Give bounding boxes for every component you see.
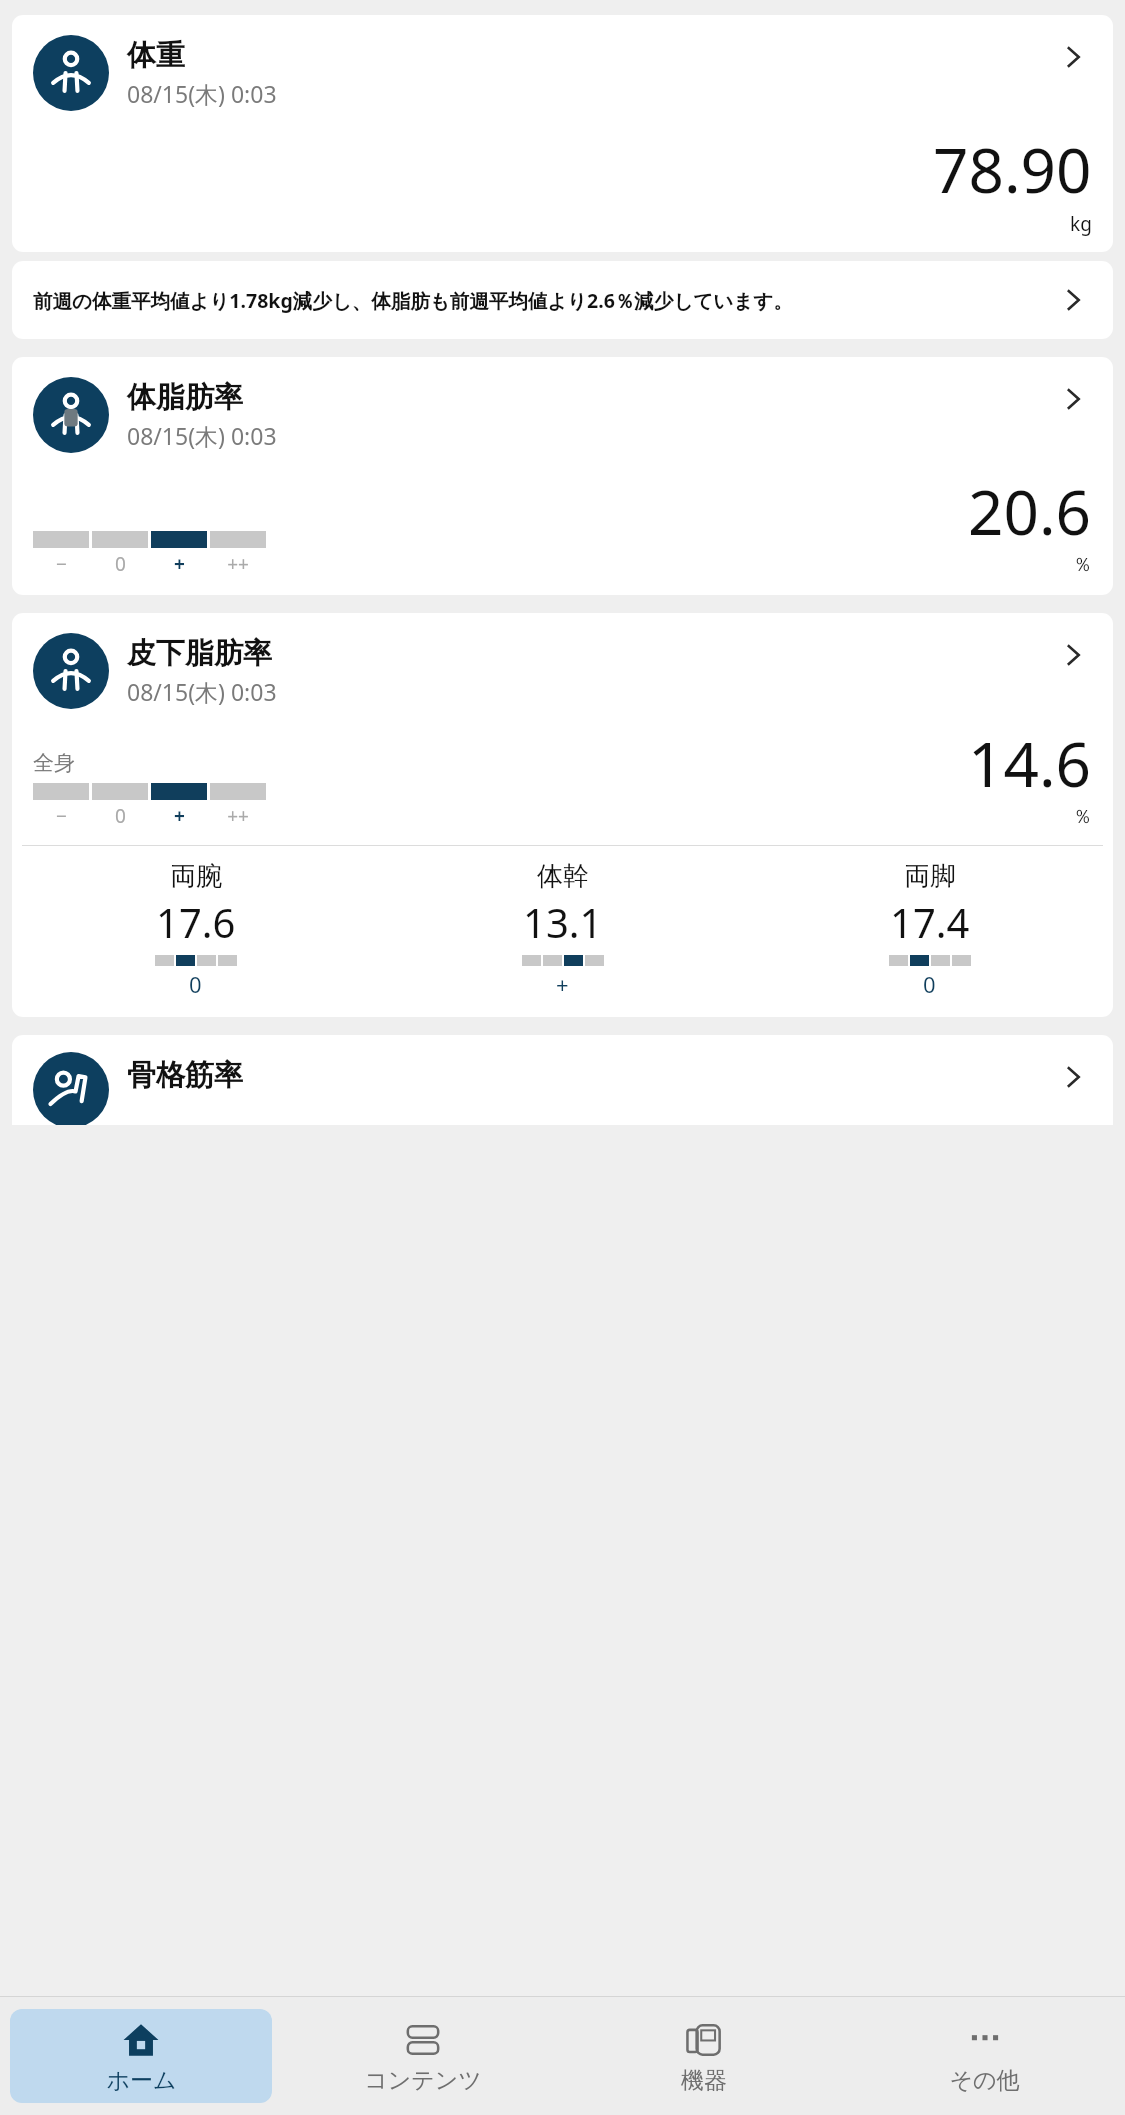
- staticText: ％: [1073, 553, 1092, 577]
- staticText: 08/15(木) 0:03: [127, 78, 277, 109]
- staticText: −: [56, 551, 67, 577]
- staticText: 両脚: [904, 860, 956, 893]
- staticText: 13.1: [523, 895, 603, 949]
- staticText: 体幹: [537, 860, 589, 893]
- button[interactable]: 体重: [12, 15, 1113, 252]
- staticText: 両腕: [170, 860, 222, 893]
- staticText: 20.6: [968, 469, 1092, 553]
- staticText: 0: [189, 969, 202, 999]
- staticText: +: [556, 969, 569, 999]
- staticText: −: [56, 803, 67, 829]
- staticText: ++: [227, 803, 249, 829]
- staticText: ホーム: [106, 2066, 177, 2095]
- staticText: 0: [115, 551, 126, 577]
- staticText: 体重: [127, 37, 185, 74]
- button[interactable]: 詳細を開く: [1053, 1057, 1093, 1097]
- staticText: 皮下脂肪率: [127, 635, 272, 672]
- staticText: 骨格筋率: [127, 1057, 243, 1094]
- staticText: 全身: [33, 750, 75, 776]
- staticText: 前週の体重平均値より1.78kg減少し、体脂肪も前週平均値より2.6％減少してい…: [33, 287, 1045, 314]
- staticText: 17.6: [156, 895, 236, 949]
- staticText: 78.90: [933, 127, 1092, 211]
- button[interactable]: 詳細を開く: [1053, 37, 1093, 77]
- staticText: 08/15(木) 0:03: [127, 420, 277, 451]
- button[interactable]: ホーム: [10, 2009, 272, 2103]
- button[interactable]: 骨格筋率: [12, 1035, 1113, 1125]
- button[interactable]: 体幹: [379, 860, 746, 999]
- button[interactable]: 前週の体重平均値より1.78kg減少し、体脂肪も前週平均値より2.6％減少してい…: [12, 261, 1113, 339]
- staticText: ++: [227, 551, 249, 577]
- staticText: その他: [949, 2066, 1020, 2095]
- button[interactable]: 皮下脂肪率: [12, 613, 1113, 1017]
- staticText: 0: [923, 969, 936, 999]
- staticText: 08/15(木) 0:03: [127, 676, 277, 707]
- staticText: 0: [115, 803, 126, 829]
- staticText: コンテンツ: [364, 2066, 482, 2095]
- button[interactable]: その他: [854, 2009, 1115, 2103]
- staticText: kg: [1070, 211, 1092, 237]
- staticText: ％: [1073, 805, 1092, 829]
- button[interactable]: 体脂肪率: [12, 357, 1113, 595]
- button[interactable]: 機器: [573, 2009, 834, 2103]
- button[interactable]: 両腕: [12, 860, 379, 999]
- staticText: 14.6: [968, 721, 1092, 805]
- staticText: +: [174, 803, 185, 829]
- button[interactable]: コンテンツ: [292, 2009, 553, 2103]
- button[interactable]: 詳細を開く: [1053, 379, 1093, 419]
- staticText: 17.4: [890, 895, 970, 949]
- staticText: +: [174, 551, 185, 577]
- button[interactable]: 詳細を開く: [1053, 635, 1093, 675]
- staticText: 機器: [681, 2066, 727, 2095]
- button[interactable]: 両脚: [746, 860, 1113, 999]
- button[interactable]: 詳細を開く: [1053, 280, 1093, 320]
- staticText: 体脂肪率: [127, 379, 243, 416]
